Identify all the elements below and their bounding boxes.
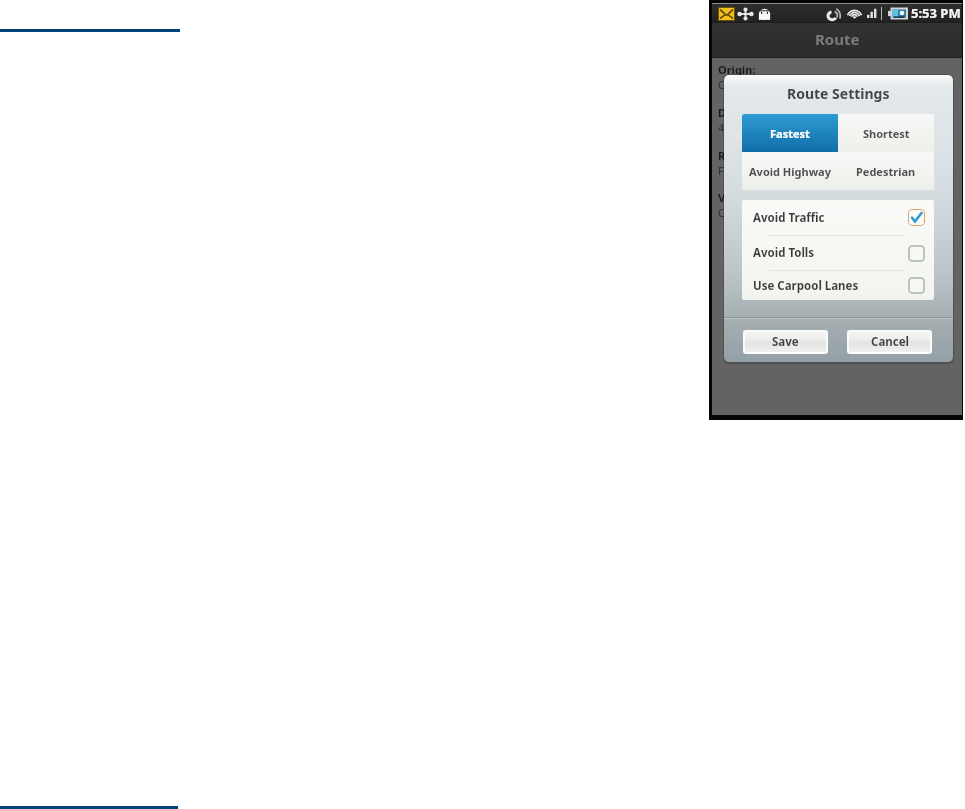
button[interactable]: Avoid Highway — [742, 152, 838, 190]
button[interactable]: Avoid Traffic — [742, 200, 934, 235]
staticText: Avoid Traffic — [753, 210, 825, 226]
staticText: Avoid Tolls — [753, 245, 815, 261]
button[interactable]: Avoid Tolls — [742, 236, 934, 270]
staticText: 450 Serra Mall — [718, 120, 792, 135]
staticText: Route Settings — [787, 84, 890, 103]
staticText: Origin: — [718, 62, 756, 77]
staticText: Use Carpool Lanes — [753, 278, 859, 294]
staticText: Current Location — [718, 77, 805, 92]
staticText: 5:53 PM — [911, 4, 961, 22]
staticText: Via: — [718, 190, 739, 205]
button[interactable]: Fastest — [742, 114, 838, 152]
button[interactable]: Cancel — [847, 330, 932, 354]
staticText: Pedestrian — [856, 164, 916, 179]
button[interactable]: Save — [743, 330, 828, 354]
staticText: Fastest — [770, 126, 810, 141]
button[interactable]: Use Carpool Lanes — [742, 271, 934, 300]
staticText: Destination: — [718, 105, 786, 120]
button[interactable]: Pedestrian — [838, 152, 934, 190]
button[interactable]: Shortest — [838, 114, 934, 152]
staticText: Shortest — [863, 126, 910, 141]
staticText: Route — [815, 29, 860, 49]
staticText: Cancel — [871, 334, 909, 350]
staticText: Fastest — [718, 163, 755, 178]
staticText: Save — [772, 334, 799, 350]
staticText: Route: — [718, 148, 754, 163]
staticText: Car — [718, 205, 736, 220]
staticText: Avoid Highway — [749, 164, 831, 179]
